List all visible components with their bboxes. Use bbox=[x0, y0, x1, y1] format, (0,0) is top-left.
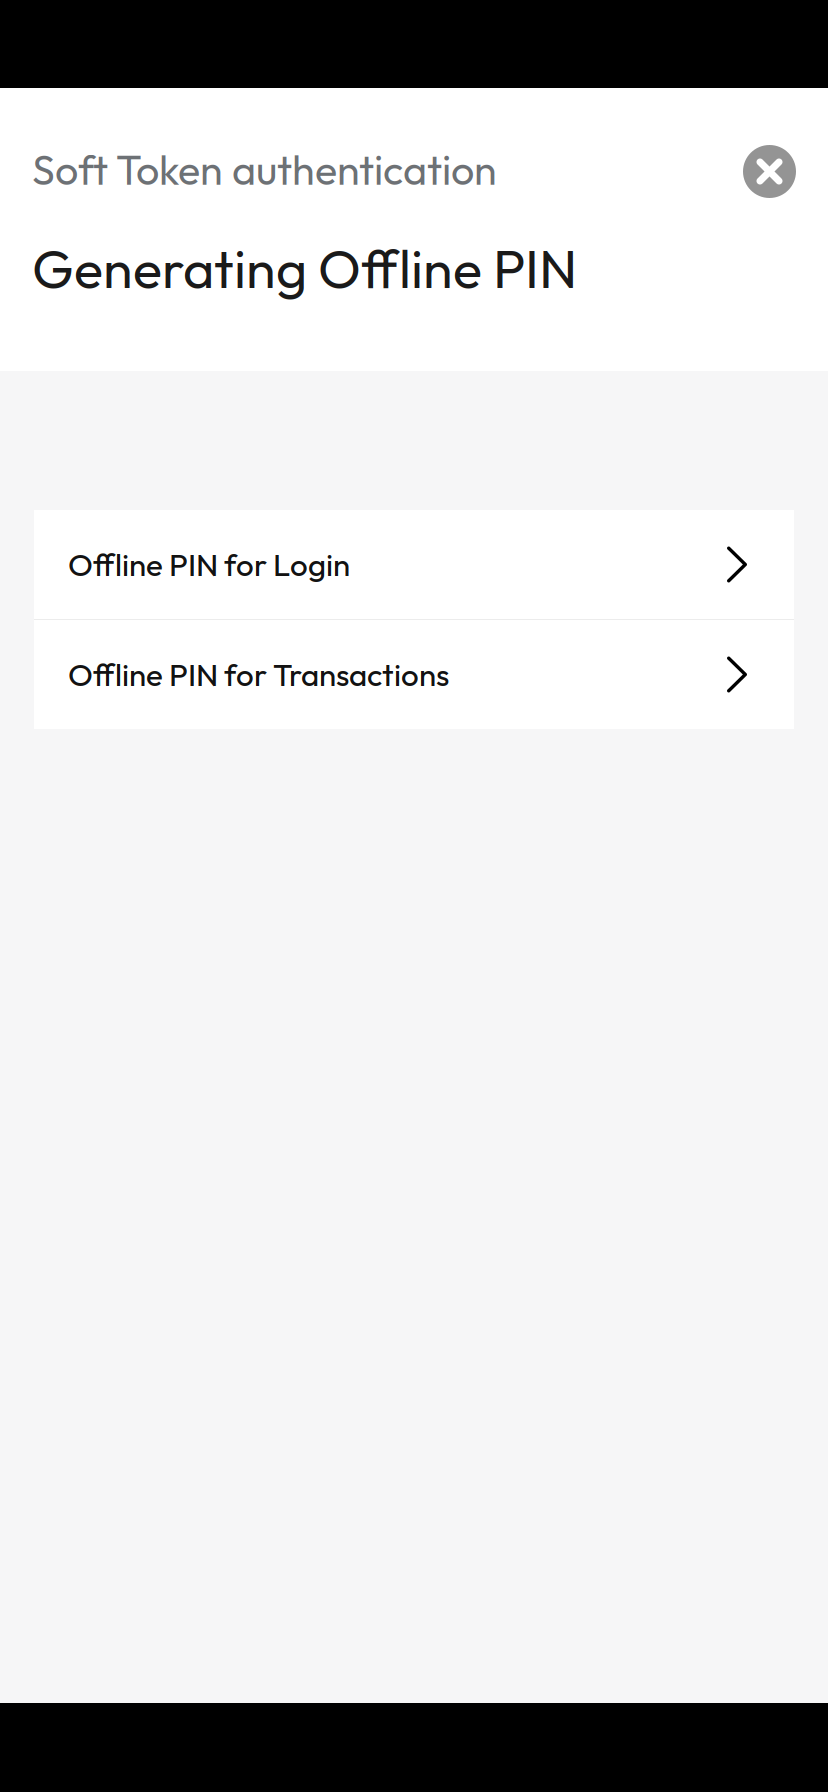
staticText: Offline PIN for Transactions bbox=[68, 655, 449, 694]
button[interactable]: Offline PIN for Transactions bbox=[34, 620, 794, 729]
staticText: Soft Token authentication bbox=[32, 143, 497, 196]
staticText: Generating Offline PIN bbox=[32, 234, 577, 290]
button[interactable]: Offline PIN for Login bbox=[34, 510, 794, 619]
button[interactable]: Close bbox=[743, 141, 828, 198]
staticText: Offline PIN for Login bbox=[68, 545, 350, 584]
